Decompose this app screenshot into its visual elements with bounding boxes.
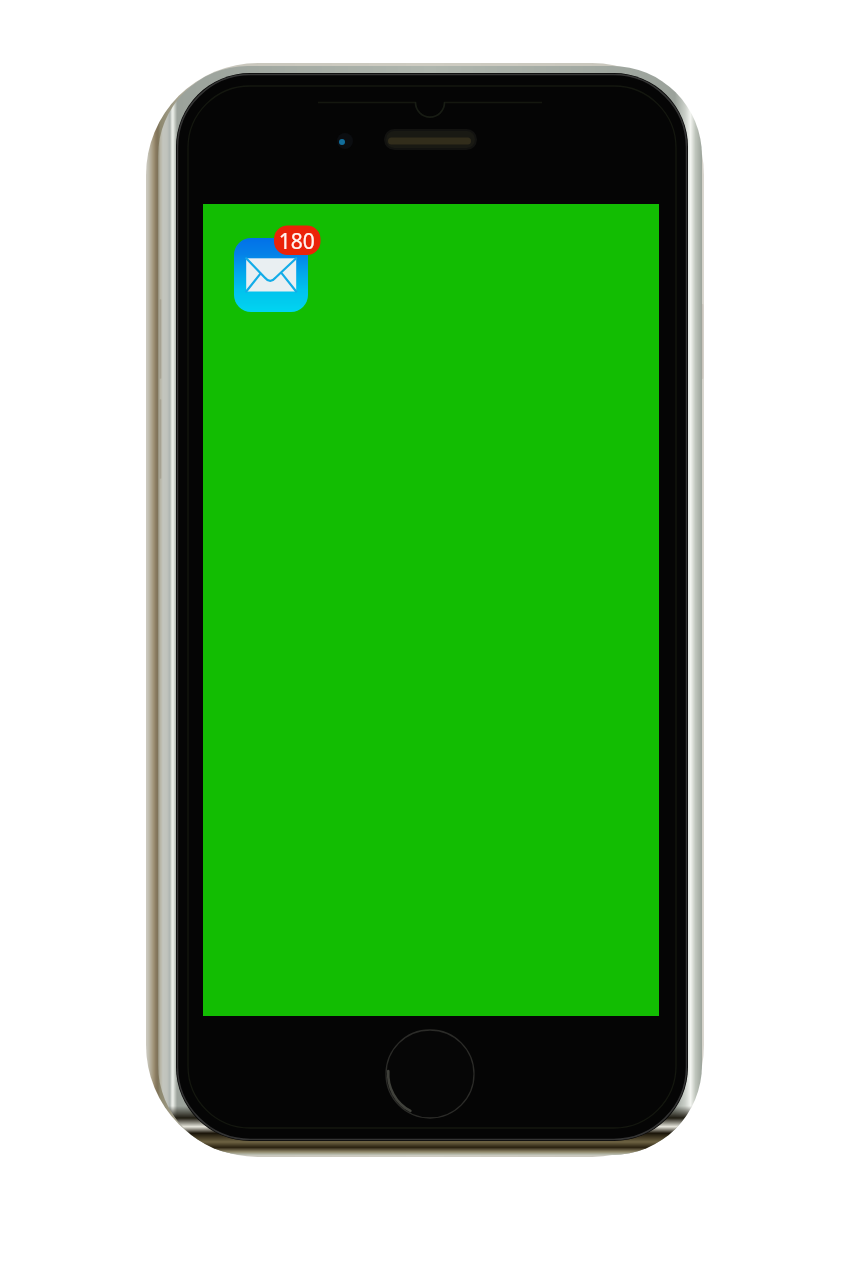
button[interactable]: Mail, 180 unread messages bbox=[234, 238, 308, 312]
button[interactable]: Home bbox=[382, 1026, 478, 1122]
